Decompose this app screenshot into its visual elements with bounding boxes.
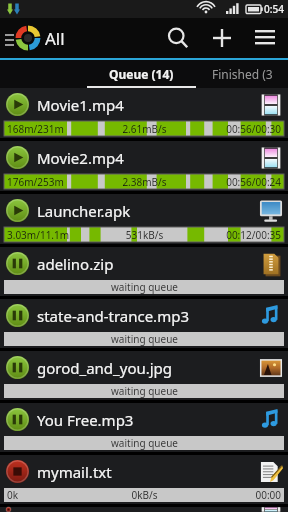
button[interactable]: Search: [156, 18, 200, 58]
button[interactable]: Start: [0, 455, 288, 504]
button[interactable]: All: [2, 22, 68, 54]
staticText: adelino.zip: [37, 254, 255, 274]
staticText: Launcher.apk: [37, 201, 255, 221]
button[interactable]: Resume: [6, 356, 29, 379]
button[interactable]: Add download: [200, 18, 244, 58]
staticText: 531kB/s: [98, 228, 191, 242]
button[interactable]: Start: [6, 507, 29, 512]
staticText: waiting queue: [111, 436, 178, 450]
staticText: 0:54: [264, 2, 284, 16]
staticText: 00:56/00:30: [191, 122, 281, 136]
staticText: 176m/253m: [7, 175, 98, 189]
staticText: waiting queue: [111, 384, 178, 398]
button[interactable]: Pause: [0, 88, 288, 138]
button[interactable]: Start: [6, 460, 29, 483]
button[interactable]: Resume: [6, 252, 29, 275]
staticText: mymail.txt: [37, 462, 255, 482]
staticText: Finished (3: [212, 66, 273, 82]
button[interactable]: Pause: [6, 93, 29, 116]
button[interactable]: Pause: [0, 141, 288, 191]
button[interactable]: Resume: [6, 304, 29, 327]
staticText: Movie2.mp4: [37, 148, 255, 168]
staticText: waiting queue: [111, 280, 178, 294]
button[interactable]: More options: [244, 18, 286, 58]
staticText: You Free.mp3: [37, 410, 255, 430]
staticText: 00:00: [191, 488, 281, 502]
button[interactable]: Pause: [6, 199, 29, 222]
staticText: 0kB/s: [98, 488, 191, 502]
staticText: 00:56/00:24: [191, 175, 281, 189]
button[interactable]: Pause: [6, 146, 29, 169]
staticText: Queue (14): [109, 66, 174, 82]
button[interactable]: Resume: [6, 408, 29, 431]
staticText: 2.61mB/s: [98, 122, 191, 136]
staticText: All: [45, 27, 65, 50]
button[interactable]: Start: [0, 507, 288, 512]
button[interactable]: Resume: [0, 299, 288, 348]
staticText: gorod_and_you.jpg: [37, 358, 255, 378]
button[interactable]: Resume: [0, 403, 288, 452]
staticText: state-and-trance.mp3: [37, 306, 255, 326]
staticText: 0k: [7, 488, 98, 502]
button[interactable]: Pause: [0, 194, 288, 244]
button[interactable]: Finished (3: [196, 60, 288, 88]
staticText: 3.03m/11.1m: [7, 228, 98, 242]
staticText: 2.38mB/s: [98, 175, 191, 189]
staticText: waiting queue: [111, 332, 178, 346]
staticText: 00:12/00:35: [191, 228, 281, 242]
button[interactable]: Resume: [0, 351, 288, 400]
button[interactable]: Queue (14): [87, 60, 196, 88]
button[interactable]: Resume: [0, 247, 288, 296]
staticText: 168m/231m: [7, 122, 98, 136]
staticText: Movie1.mp4: [37, 95, 255, 115]
